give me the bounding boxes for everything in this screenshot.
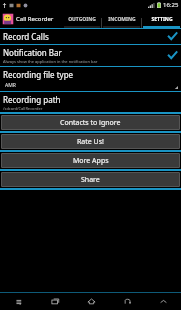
button[interactable]: Share [1,172,180,187]
button[interactable]: Recording file type [0,67,181,91]
staticText: Recording file type [3,69,74,80]
button[interactable]: Recording path [0,92,181,112]
button[interactable]: Home [73,293,109,310]
button[interactable]: Recent apps [37,293,73,310]
staticText: Recording path [3,94,61,105]
button[interactable]: Record Calls [0,29,181,44]
button[interactable]: Expand [145,293,181,310]
button[interactable]: Menu [0,293,37,310]
button[interactable]: Contacts to ignore [1,115,180,130]
staticText: INCOMING [108,16,136,23]
staticText: Rate Us! [77,137,104,147]
button[interactable]: OUTGOING [63,13,101,28]
staticText: Record Calls [3,31,49,42]
staticText: Notification Bar [3,47,62,58]
button[interactable]: SETTING [142,13,181,28]
staticText: More Apps [73,156,109,166]
staticText: OUTGOING [68,16,96,23]
staticText: Call Recorder [16,15,54,23]
staticText: Contacts to ignore [60,118,121,128]
staticText: /sdcard/CallRecorder [3,106,43,111]
staticText: Share [81,175,100,185]
button[interactable]: Back [109,293,145,310]
button[interactable]: Notification Bar [0,45,181,66]
staticText: SETTING [151,16,173,23]
button[interactable]: INCOMING [102,13,141,28]
staticText: Always show the application in the notif… [3,59,98,64]
button[interactable]: Rate Us! [1,134,180,149]
button[interactable]: More Apps [1,153,180,168]
staticText: 16:25 [163,1,179,9]
staticText: AMR [5,82,16,89]
